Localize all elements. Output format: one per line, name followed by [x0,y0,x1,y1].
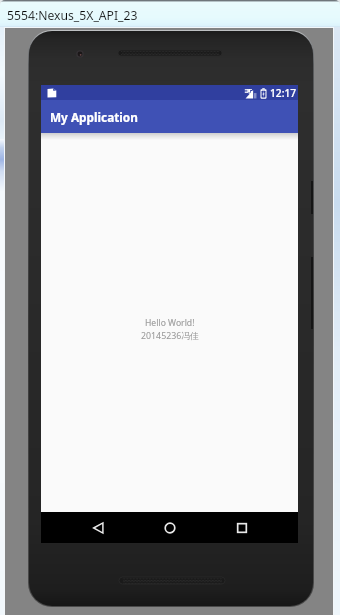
staticText: My Application [50,109,138,125]
button[interactable]: My Application [41,100,298,133]
button[interactable]: Home [152,512,188,543]
staticText: 12:17 [270,86,297,100]
staticText: 5554:Nexus_5X_API_23 [7,7,138,24]
staticText: Hello World! [145,317,195,329]
button[interactable]: Back [80,512,116,543]
button[interactable]: Recents [224,512,260,543]
staticText: 20145236冯佳 [141,330,199,342]
